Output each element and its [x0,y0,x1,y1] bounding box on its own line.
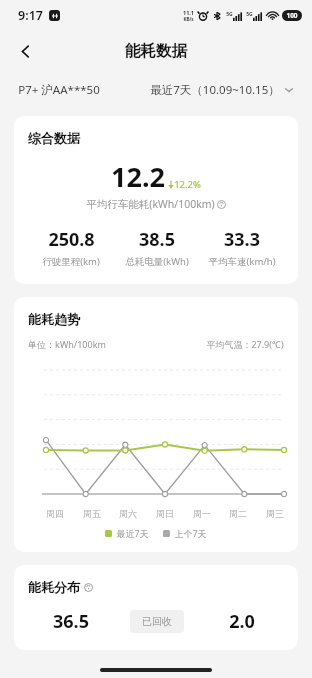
staticText: 周六 [119,508,137,519]
staticText: 能耗趋势 [28,311,80,327]
button[interactable]: 38.5 [114,227,199,268]
button[interactable]: 250.8 [28,227,114,268]
staticText: 5G [226,11,233,18]
staticText: 最近7天（10.09~10.15） [150,82,280,98]
staticText: 行驶里程(km) [42,255,100,268]
staticText: 5G [246,11,253,18]
button[interactable]: 最近7天 [105,527,149,539]
staticText: 36.5 [53,609,89,634]
button[interactable]: P7+ 沪AA***50 [18,82,100,98]
staticText: 上个7天 [174,527,207,539]
staticText: KB/s [183,16,194,22]
staticText: 周四 [46,508,64,519]
staticText: 周二 [229,508,247,519]
staticText: 最近7天 [116,527,149,539]
button[interactable]: 已回收 [114,610,199,633]
staticText: 能耗数据 [125,41,187,61]
staticText: 12.2% [174,178,201,191]
button[interactable]: 33.3 [199,227,284,268]
staticText: 总耗电量(kWh) [125,255,189,268]
button[interactable]: 最近7天（10.09~10.15） [150,82,294,98]
staticText: 综合数据 [28,130,80,146]
staticText: 周一 [193,508,211,519]
staticText: 33.3 [224,227,260,252]
staticText: P7+ 沪AA***50 [18,82,100,98]
button[interactable]: Back [8,34,42,68]
staticText: 周五 [83,508,101,519]
staticText: 周日 [156,508,174,519]
staticText: 平均行车能耗(kWh/100km) [86,197,215,211]
staticText: 平均车速(km/h) [208,255,276,268]
staticText: 38.5 [139,227,175,252]
staticText: 单位：kWh/100km [28,338,106,350]
staticText: 250.8 [48,227,95,252]
staticText: 100 [286,11,298,20]
staticText: 平均气温：27.9(℃) [206,338,284,350]
staticText: 11.1 [183,9,194,16]
staticText: 周三 [266,508,284,519]
staticText: 2.0 [229,609,255,634]
staticText: 能耗分布 [28,579,80,595]
button[interactable]: 上个7天 [163,527,207,539]
staticText: 9:17 [18,7,43,24]
staticText: 12.2 [111,158,165,195]
staticText: 已回收 [142,615,172,628]
